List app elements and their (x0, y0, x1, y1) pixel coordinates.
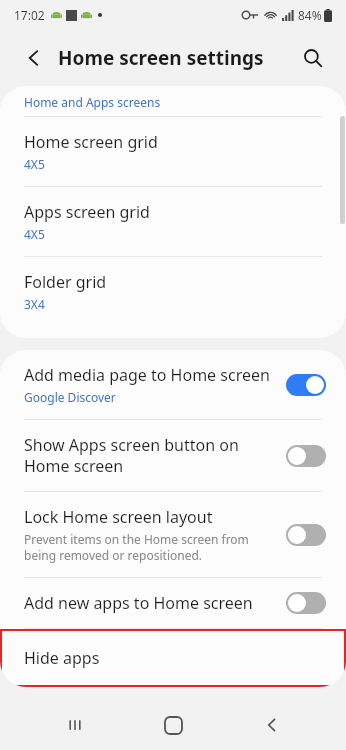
button[interactable]: Folder grid (0, 257, 346, 326)
staticText: 4X5 (24, 156, 45, 172)
staticText: Hide apps (24, 647, 100, 669)
button[interactable]: Toggle (286, 524, 326, 546)
staticText: Home and Apps screens (24, 94, 161, 110)
button[interactable]: Hide apps (0, 629, 346, 687)
staticText: 84% (298, 7, 322, 23)
staticText: Show Apps screen button on Home screen (24, 434, 274, 477)
button[interactable]: Add new apps to Home screen (0, 578, 346, 628)
staticText: Google Discover (24, 389, 116, 405)
staticText: Home screen settings (58, 45, 264, 71)
button[interactable]: Back (248, 701, 296, 749)
button[interactable]: Back (18, 42, 50, 74)
staticText: Add new apps to Home screen (24, 592, 253, 614)
staticText: Lock Home screen layout (24, 506, 213, 528)
button[interactable]: Search (296, 41, 330, 75)
button[interactable]: Add media page to Home screen (0, 350, 346, 419)
staticText: Folder grid (24, 271, 107, 293)
button[interactable]: Recents (51, 701, 99, 749)
staticText: Home screen grid (24, 131, 158, 153)
button[interactable]: Toggle (286, 592, 326, 614)
staticText: 4X5 (24, 226, 45, 242)
staticText: 3X4 (24, 296, 45, 312)
button[interactable]: Apps screen grid (0, 187, 346, 256)
button[interactable]: Lock Home screen layout (0, 492, 346, 577)
staticText: 17:02 (14, 7, 45, 23)
staticText: Prevent items on the Home screen from be… (24, 531, 274, 563)
button[interactable]: Show Apps screen button on Home screen (0, 420, 346, 491)
button[interactable]: Home (149, 701, 197, 749)
staticText: Add media page to Home screen (24, 364, 270, 386)
staticText: Apps screen grid (24, 201, 150, 223)
button[interactable]: Toggle (286, 374, 326, 396)
button[interactable]: Home screen grid (0, 117, 346, 186)
button[interactable]: Toggle (286, 445, 326, 467)
